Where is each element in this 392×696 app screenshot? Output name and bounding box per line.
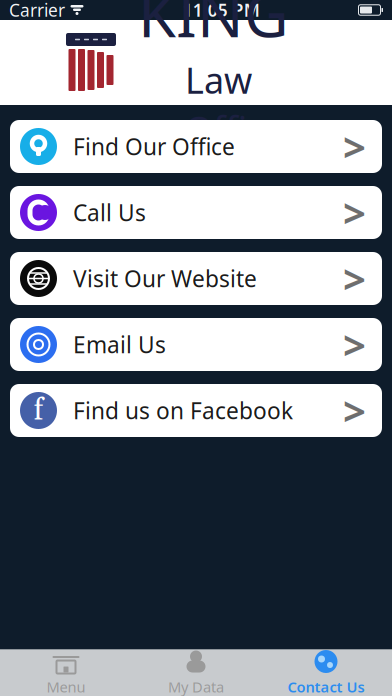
staticText: Call Us <box>73 197 146 227</box>
button[interactable]: Contact Us <box>261 650 391 696</box>
staticText: Menu <box>46 677 85 696</box>
button[interactable]: Menu <box>1 650 131 696</box>
staticText: > <box>343 384 366 437</box>
staticText: > <box>343 318 366 371</box>
staticText: Find Our Office <box>73 131 235 161</box>
staticText: Law Offices <box>185 55 301 153</box>
staticText: > <box>343 120 366 173</box>
staticText: 11:05 PM <box>183 0 260 21</box>
staticText: My Data <box>168 677 224 696</box>
staticText: > <box>343 252 366 305</box>
staticText: Find us on Facebook <box>73 395 293 425</box>
staticText: Email Us <box>73 329 166 359</box>
staticText: Visit Our Website <box>73 263 257 293</box>
staticText: f <box>33 391 43 430</box>
staticText: > <box>343 186 366 239</box>
staticText: Carrier <box>9 0 65 21</box>
button[interactable]: My Data <box>131 650 261 696</box>
button[interactable]: Email Us <box>10 318 382 371</box>
button[interactable]: Visit Our Website <box>10 252 382 305</box>
button[interactable]: f <box>10 384 382 437</box>
staticText: KING <box>138 0 289 55</box>
button[interactable]: Find Our Office <box>10 120 382 173</box>
button[interactable]: Call Us <box>10 186 382 239</box>
staticText: Contact Us <box>287 677 364 696</box>
